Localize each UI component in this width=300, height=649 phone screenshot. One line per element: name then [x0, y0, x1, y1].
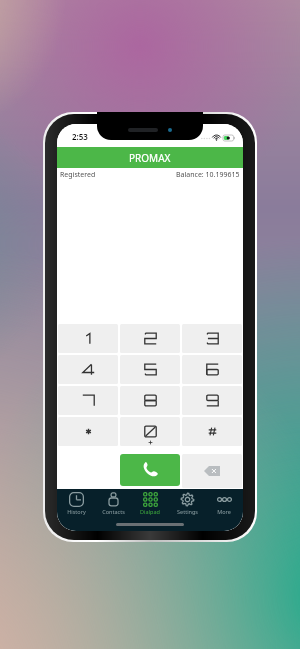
button[interactable]: Key 8: [120, 386, 180, 415]
staticText: More: [217, 508, 231, 515]
staticText: History: [67, 508, 86, 515]
button[interactable]: Call: [120, 454, 180, 486]
button[interactable]: History: [58, 491, 94, 515]
button[interactable]: Key *: [58, 417, 118, 446]
staticText: Contacts: [102, 508, 125, 515]
button[interactable]: Key 5: [120, 355, 180, 384]
staticText: Settings: [177, 508, 198, 515]
staticText: Dialpad: [140, 508, 160, 515]
button[interactable]: Key 1: [58, 324, 118, 353]
button[interactable]: Backspace: [182, 454, 242, 488]
button[interactable]: Key 2: [120, 324, 180, 353]
button[interactable]: Dialpad: [132, 491, 168, 515]
button[interactable]: Key 3: [182, 324, 242, 353]
button[interactable]: Key 4: [58, 355, 118, 384]
staticText: Balance: 10.199615: [176, 170, 240, 180]
button[interactable]: Settings: [169, 491, 205, 515]
staticText: Registered: [60, 170, 96, 180]
staticText: PROMAX: [129, 151, 171, 165]
button[interactable]: Contacts: [95, 491, 131, 515]
staticText: 2:53: [72, 131, 88, 142]
button[interactable]: Key #: [182, 417, 242, 446]
button[interactable]: Key 0: [120, 417, 180, 446]
button[interactable]: Key 6: [182, 355, 242, 384]
button[interactable]: Key 9: [182, 386, 242, 415]
button[interactable]: Key 7: [58, 386, 118, 415]
button[interactable]: More: [206, 491, 242, 515]
